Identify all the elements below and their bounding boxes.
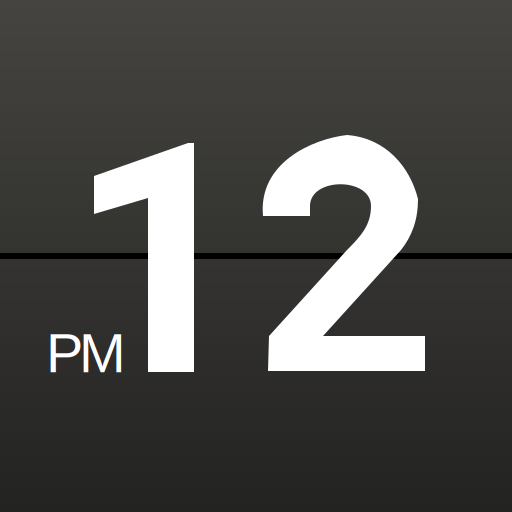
- button[interactable]: 12 PM: [0, 0, 512, 512]
- staticText: PM: [46, 321, 126, 384]
